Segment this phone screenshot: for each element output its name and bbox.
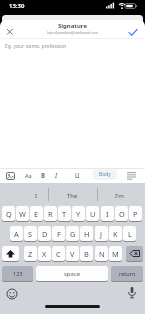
button[interactable] — [124, 285, 140, 301]
button[interactable]: P — [129, 206, 142, 221]
button[interactable]: Body — [93, 169, 117, 180]
staticText: X — [42, 249, 47, 259]
staticText: F — [57, 229, 61, 239]
staticText: space — [64, 270, 81, 278]
staticText: I — [35, 192, 38, 200]
staticText: Body — [99, 171, 111, 178]
button[interactable]: V — [66, 246, 79, 261]
staticText: Aa — [25, 172, 32, 179]
button[interactable]: X — [38, 246, 51, 261]
staticText: I — [55, 171, 58, 179]
button[interactable]: Aa — [22, 168, 35, 183]
staticText: luke.skywalker@starbased.com — [0, 30, 145, 35]
button[interactable]: I'm — [96, 185, 143, 206]
button[interactable]: E — [30, 206, 43, 221]
staticText: The — [67, 192, 78, 200]
button[interactable]: L — [123, 226, 136, 241]
button[interactable]: K — [109, 226, 122, 241]
staticText: Eg. your name, profession — [5, 43, 67, 50]
button[interactable]: M — [109, 246, 122, 261]
button[interactable]: R — [44, 206, 57, 221]
button[interactable]: C — [52, 246, 65, 261]
button[interactable]: B — [80, 246, 93, 261]
button[interactable]: T — [58, 206, 71, 221]
staticText: N — [99, 249, 105, 259]
staticText: I'm — [115, 192, 124, 200]
button[interactable]: U — [86, 206, 99, 221]
button[interactable] — [4, 286, 20, 302]
staticText: D — [42, 229, 48, 239]
button[interactable]: Z — [24, 246, 37, 261]
staticText: U — [75, 171, 80, 179]
button[interactable]: O — [115, 206, 128, 221]
staticText: B — [41, 171, 46, 179]
staticText: Q — [6, 209, 12, 219]
staticText: H — [84, 229, 90, 239]
button[interactable]: A — [10, 226, 23, 241]
staticText: J — [100, 229, 103, 239]
staticText: E — [34, 209, 39, 219]
button[interactable]: 123 — [2, 266, 33, 281]
staticText: 13:30 — [9, 2, 25, 10]
staticText: 123 — [13, 270, 23, 277]
button[interactable] — [3, 169, 17, 182]
staticText: W — [19, 209, 26, 219]
button[interactable]: B — [37, 168, 48, 183]
staticText: G — [70, 229, 76, 239]
button[interactable]: S — [24, 226, 37, 241]
staticText: O — [119, 209, 125, 219]
staticText: L — [128, 229, 132, 239]
button[interactable]: The — [48, 185, 96, 206]
staticText: return — [119, 270, 136, 277]
staticText: M — [112, 249, 119, 259]
button[interactable]: F — [52, 226, 65, 241]
button[interactable]: I — [50, 168, 61, 183]
button[interactable]: H — [80, 226, 93, 241]
staticText: Z — [28, 249, 33, 259]
staticText: T — [62, 209, 67, 219]
staticText: P — [133, 209, 138, 219]
staticText: Signature — [0, 22, 145, 30]
button[interactable]: J — [95, 226, 108, 241]
button[interactable] — [2, 246, 19, 261]
button[interactable]: return — [111, 266, 143, 281]
button[interactable]: space — [36, 266, 108, 281]
button[interactable] — [124, 169, 138, 182]
button[interactable]: D — [38, 226, 51, 241]
button[interactable]: I — [24, 185, 48, 206]
staticText: Y — [76, 209, 81, 219]
staticText: C — [56, 249, 61, 259]
button[interactable]: Y — [72, 206, 85, 221]
staticText: I — [106, 209, 109, 219]
staticText: B — [84, 249, 89, 259]
button[interactable] — [4, 26, 16, 38]
button[interactable] — [126, 246, 143, 261]
staticText: U — [90, 209, 96, 219]
button[interactable] — [126, 26, 140, 38]
staticText: K — [113, 229, 118, 239]
staticText: V — [70, 249, 75, 259]
button[interactable]: G — [66, 226, 79, 241]
button[interactable]: Q — [2, 206, 15, 221]
button[interactable]: U — [71, 168, 82, 183]
button[interactable]: N — [95, 246, 108, 261]
button[interactable]: I — [101, 206, 114, 221]
button[interactable]: W — [16, 206, 29, 221]
staticText: R — [48, 209, 53, 219]
staticText: S — [28, 229, 33, 239]
staticText: A — [14, 229, 19, 239]
